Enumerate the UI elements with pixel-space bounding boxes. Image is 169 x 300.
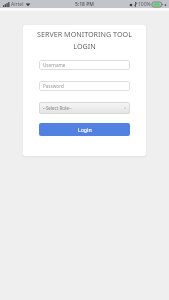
- button[interactable]: Username: [39, 60, 130, 70]
- other: Select role: [123, 106, 127, 110]
- staticText: 100%: [138, 1, 151, 8]
- other: Alarm: [129, 3, 133, 7]
- other: Cellular signal: [3, 2, 10, 7]
- other: Bluetooth: [134, 2, 137, 7]
- staticText: LOGIN: [23, 41, 146, 51]
- button[interactable]: Password: [39, 81, 130, 91]
- staticText: SERVER MONITORING TOOL: [23, 29, 146, 39]
- button[interactable]: --Select Role--: [39, 102, 130, 114]
- button[interactable]: Login: [39, 123, 130, 136]
- other: Battery 100 percent: [152, 2, 163, 7]
- staticText: Login: [78, 126, 92, 133]
- staticText: Password: [43, 83, 64, 89]
- staticText: --Select Role--: [43, 105, 72, 111]
- staticText: 5:18 PM: [75, 1, 94, 8]
- staticText: Username: [43, 62, 66, 68]
- other: Wi-Fi: [25, 2, 31, 7]
- staticText: Airtel: [11, 1, 24, 8]
- other: Charging: [164, 3, 167, 7]
